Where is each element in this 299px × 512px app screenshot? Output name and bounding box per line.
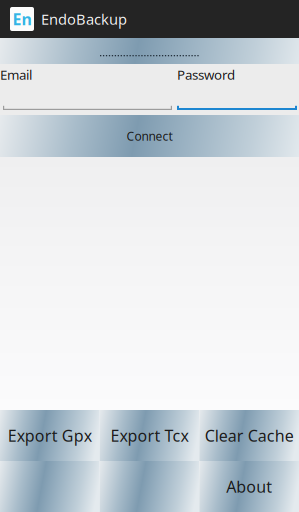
staticText: About [226, 476, 272, 497]
staticText: Export Tcx [110, 425, 188, 446]
button[interactable]: About [199, 461, 299, 512]
staticText: Clear Cache [205, 425, 294, 446]
button[interactable]: Connect [0, 115, 299, 157]
button[interactable] [0, 461, 100, 512]
button[interactable] [100, 461, 199, 512]
staticText: En [12, 8, 31, 30]
button[interactable]: Clear Cache [199, 410, 299, 461]
staticText: Email [0, 66, 32, 83]
staticText: EndoBackup [41, 9, 127, 29]
button[interactable]: Export Gpx [0, 410, 100, 461]
staticText: Export Gpx [8, 425, 92, 446]
button[interactable]: Export Tcx [100, 410, 199, 461]
staticText: Password [177, 66, 235, 83]
staticText: Connect [126, 128, 172, 144]
